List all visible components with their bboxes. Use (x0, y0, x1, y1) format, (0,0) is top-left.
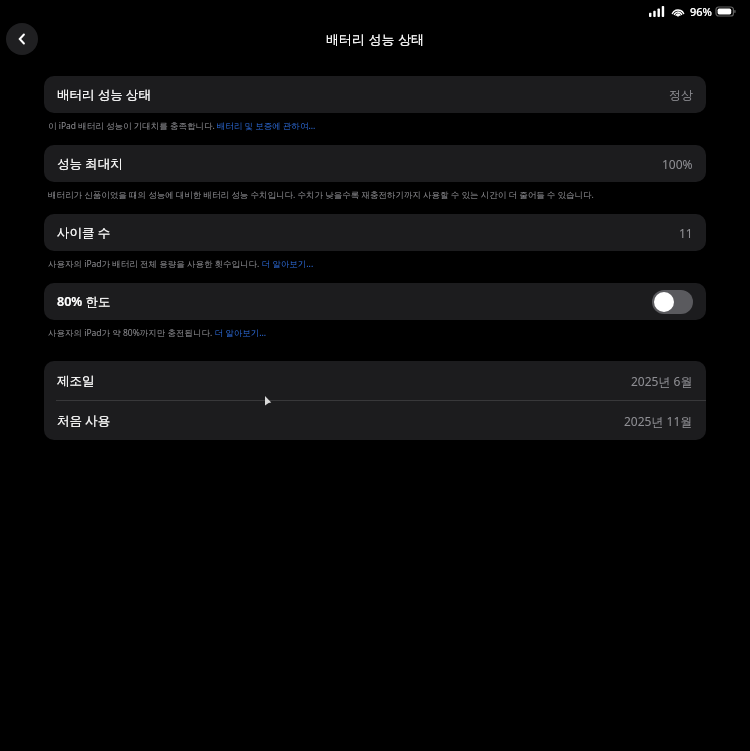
staticText: 배터리가 신품이었을 때의 성능에 대비한 배터리 성능 수치입니다. 수치가 … (48, 189, 594, 201)
button[interactable]: 사이클 수 (44, 214, 706, 251)
staticText: 2025년 6월 (631, 373, 693, 389)
staticText: 이 iPad 배터리 성능이 기대치를 충족합니다. 배터리 및 보증에 관하여… (48, 120, 316, 132)
button[interactable]: 성능 최대치 (44, 145, 706, 182)
button[interactable]: 80% 한도 (44, 283, 706, 320)
button[interactable]: 배터리 성능 상태 (44, 76, 706, 113)
button[interactable]: 제조일 (44, 361, 706, 400)
staticText: 11 (679, 225, 693, 241)
staticText: 2025년 11월 (624, 413, 693, 429)
staticText: 80% 한도 (57, 293, 111, 310)
staticText: 100% (662, 156, 693, 172)
staticText: 제조일 (57, 373, 95, 389)
staticText: 사용자의 iPad가 배터리 전체 용량을 사용한 횟수입니다. 더 알아보기.… (48, 258, 314, 270)
staticText: 배터리 성능 상태 (57, 86, 152, 103)
staticText: 사이클 수 (57, 224, 111, 241)
staticText: 사용자의 iPad가 약 80%까지만 충전됩니다. 더 알아보기... (48, 327, 267, 339)
staticText: 정상 (669, 87, 693, 102)
staticText: 성능 최대치 (57, 155, 123, 172)
staticText: 배터리 성능 상태 (326, 30, 424, 48)
button[interactable]: Back (6, 23, 38, 55)
button[interactable]: 80% limit toggle (652, 290, 693, 314)
button[interactable]: 처음 사용 (44, 401, 706, 440)
staticText: 96% (690, 4, 712, 19)
staticText: 처음 사용 (57, 412, 111, 429)
